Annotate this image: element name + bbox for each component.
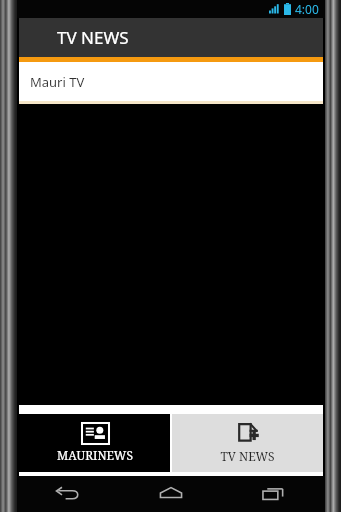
button[interactable]: MAURINEWS — [19, 414, 170, 472]
button[interactable]: TV NEWS — [172, 414, 323, 472]
staticText: MAURINEWS — [57, 447, 133, 463]
button[interactable]: Home — [119, 476, 222, 512]
button[interactable]: Recents — [222, 476, 325, 512]
staticText: TV NEWS — [220, 448, 275, 464]
staticText: 4:00 — [295, 1, 319, 17]
staticText: Mauri TV — [30, 73, 85, 91]
button[interactable]: Mauri TV — [19, 62, 323, 101]
button[interactable]: Back — [17, 476, 119, 512]
staticText: TV NEWS — [57, 26, 129, 49]
